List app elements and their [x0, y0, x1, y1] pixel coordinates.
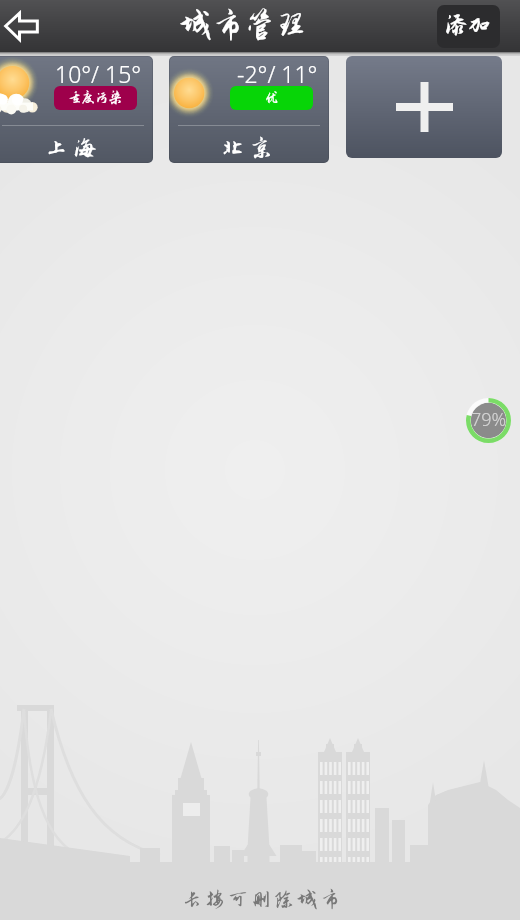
staticText: 长按可删除城市	[182, 889, 344, 911]
button[interactable]: 10°/ 15°	[0, 56, 153, 163]
button[interactable]: Add city	[346, 56, 502, 158]
button[interactable]: Memory usage 79 percent	[466, 398, 511, 443]
button[interactable]: 添加	[437, 5, 500, 48]
button[interactable]: Back	[0, 0, 56, 52]
staticText: 重度污染	[68, 90, 123, 105]
staticText: 城市管理	[180, 8, 309, 42]
staticText: 北京	[221, 135, 278, 161]
staticText: 添加	[445, 13, 492, 38]
staticText: 10°/ 15°	[55, 58, 142, 89]
staticText: -2°/ 11°	[237, 58, 318, 89]
button[interactable]: -2°/ 11°	[169, 56, 329, 163]
staticText: 上海	[45, 135, 102, 161]
staticText: 79%	[471, 407, 507, 432]
staticText: 优	[265, 90, 279, 105]
